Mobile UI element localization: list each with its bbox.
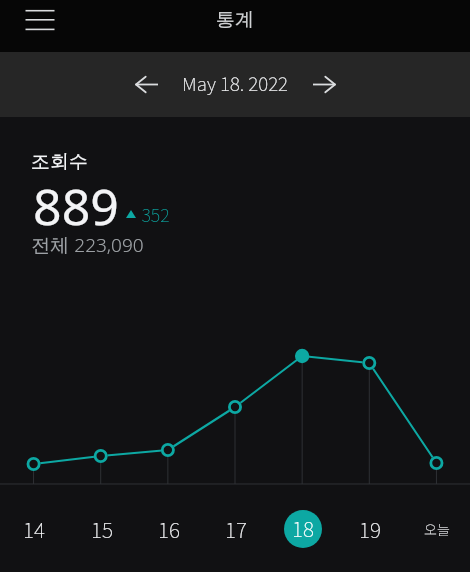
- button[interactable]: Menu: [14, 0, 66, 52]
- button[interactable]: Next day: [301, 62, 346, 107]
- staticText: 14: [23, 514, 45, 544]
- staticText: 15: [91, 514, 113, 544]
- button[interactable]: 19: [336, 485, 403, 572]
- staticText: 16: [158, 514, 180, 544]
- staticText: 19: [359, 514, 381, 544]
- button[interactable]: 17: [202, 485, 269, 572]
- staticText: May 18. 2022: [182, 69, 288, 97]
- button[interactable]: Previous day: [124, 62, 169, 107]
- button[interactable]: 16: [135, 485, 202, 572]
- button[interactable]: 14: [0, 485, 68, 572]
- staticText: 통계: [216, 8, 254, 32]
- staticText: 17: [225, 514, 247, 544]
- staticText: 18: [292, 513, 314, 543]
- button[interactable]: 오늘: [403, 485, 470, 572]
- button[interactable]: 18: [269, 485, 336, 572]
- staticText: 352: [141, 201, 170, 227]
- staticText: 전체 223,090: [31, 232, 144, 258]
- staticText: 889: [33, 172, 119, 240]
- button[interactable]: 15: [68, 485, 135, 572]
- staticText: 오늘: [424, 519, 450, 539]
- staticText: 조회수: [31, 150, 88, 174]
